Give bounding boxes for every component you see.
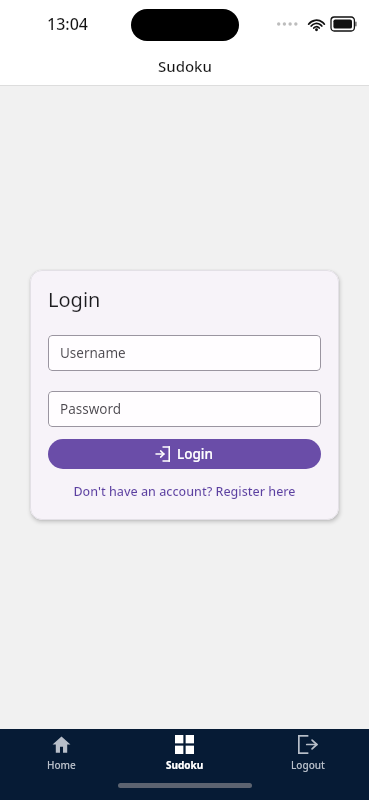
- staticText: 13:04: [47, 13, 88, 35]
- staticText: Sudoku: [166, 758, 204, 772]
- other: Sudoku: [175, 735, 194, 754]
- button[interactable]: Logout: [246, 731, 369, 776]
- other: Logout: [298, 735, 317, 754]
- button[interactable]: Login: [48, 439, 321, 469]
- staticText: Login: [177, 445, 213, 463]
- staticText: Sudoku: [158, 56, 212, 76]
- button[interactable]: Sudoku: [123, 731, 246, 776]
- staticText: Home: [47, 758, 76, 772]
- staticText: Login: [48, 286, 101, 313]
- button[interactable]: Home: [0, 731, 123, 776]
- staticText: Password: [60, 400, 122, 418]
- staticText: Username: [60, 344, 126, 362]
- staticText: Don't have an account? Register here: [73, 483, 296, 500]
- button[interactable]: Username: [48, 335, 321, 371]
- button[interactable]: Password: [48, 391, 321, 427]
- staticText: Logout: [291, 758, 325, 772]
- button[interactable]: Don't have an account? Register here: [48, 483, 321, 500]
- other: Home: [52, 735, 71, 754]
